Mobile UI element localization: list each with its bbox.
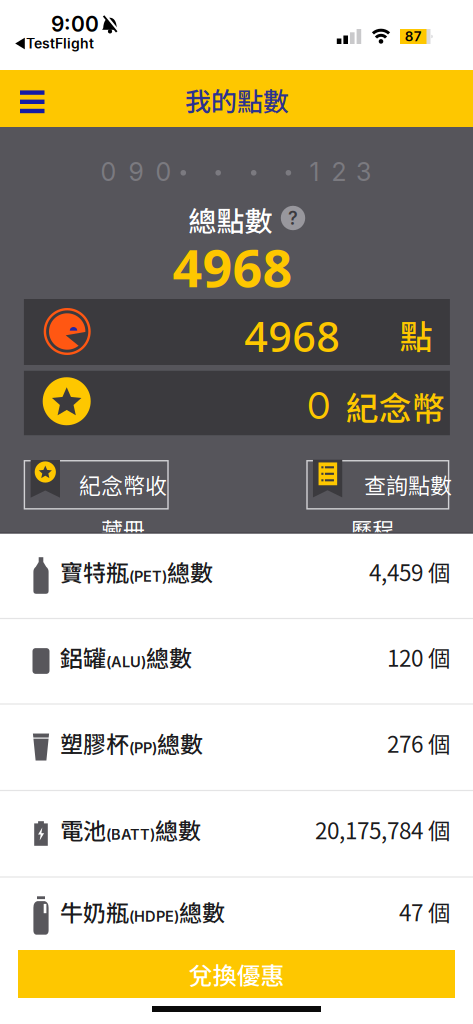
staticText: TestFlight [26,35,94,52]
button[interactable]: About total points [281,206,305,230]
staticText: 9 [128,157,143,187]
staticText: 我的點數 [185,81,289,119]
staticText: 鋁罐(ALU)總數 [60,641,192,673]
staticText: 47 個 [399,895,451,928]
staticText: 藏冊 [101,513,145,545]
staticText: 120 個 [387,641,451,673]
staticText: 電池(BATT)總數 [60,813,201,846]
staticText: 3 [356,157,371,187]
staticText: 4,459 個 [369,555,451,588]
staticText: 歷程 [350,513,394,545]
staticText: 87 [405,28,422,44]
staticText: 4968 [244,309,340,363]
staticText: 塑膠杯(PP)總數 [60,727,203,759]
button[interactable]: 兌換優惠 [18,950,455,998]
staticText: 紀念幣收 [79,468,167,500]
staticText: 查詢點數 [364,468,452,500]
staticText: 20,175,784 個 [315,813,451,846]
staticText: 紀念幣 [346,382,445,430]
staticText: 兌換優惠 [188,957,284,991]
staticText: 2 [331,157,346,187]
staticText: 寶特瓶(PET)總數 [60,555,213,588]
staticText: 9:00 [51,11,99,37]
staticText: 4968 [172,232,292,302]
staticText: 0 [307,382,330,428]
staticText: 牛奶瓶(HDPE)總數 [60,895,225,928]
staticText: 276 個 [387,727,451,759]
button[interactable]: Menu [10,82,54,122]
staticText: 0 [100,157,116,187]
staticText: 0 [155,157,171,187]
staticText: 總點數 [188,199,272,240]
staticText: ? [288,207,298,229]
button[interactable]: 查詢點數歷程 [306,460,449,510]
staticText: 點 [399,311,432,358]
button[interactable]: 紀念幣收藏冊 [24,460,169,510]
staticText: 1 [309,157,319,187]
